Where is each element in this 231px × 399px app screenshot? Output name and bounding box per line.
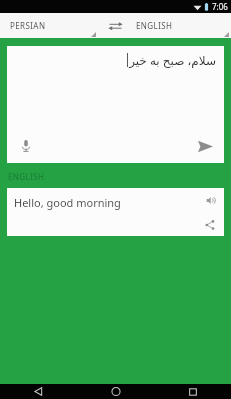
button[interactable]: Voice input [17,137,35,155]
button[interactable]: Listen [202,192,218,208]
button[interactable]: سلام، صبح به خیر [7,46,224,163]
staticText: Hello, good morning [14,195,121,210]
button[interactable]: Swap languages [98,13,132,38]
staticText: ENGLISH [8,171,45,182]
staticText: 7:06 [212,1,228,12]
button[interactable]: ENGLISH [132,13,231,38]
button[interactable]: Home [77,384,154,399]
staticText: ENGLISH [136,20,173,31]
button[interactable]: Back [0,384,77,399]
button[interactable]: Hello, good morning [7,188,224,236]
button[interactable]: Translate [194,135,216,157]
button[interactable]: Recent apps [154,384,231,399]
button[interactable]: PERSIAN [0,13,98,38]
staticText: PERSIAN [10,20,46,31]
button[interactable]: Share [202,217,218,233]
staticText: سلام، صبح به خیر [129,52,216,68]
